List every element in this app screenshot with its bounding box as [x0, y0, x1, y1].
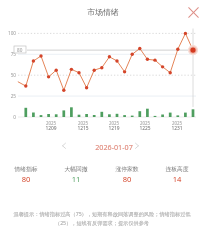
- staticText: 1225: [133, 125, 157, 132]
- staticText: 2026-01-07: [84, 142, 144, 152]
- staticText: 2025: [39, 120, 63, 126]
- staticText: 80: [17, 47, 23, 53]
- staticText: 2025: [133, 120, 157, 126]
- staticText: 25: [2, 93, 16, 99]
- button[interactable]: Close: [185, 4, 202, 21]
- staticText: 涨停家数: [102, 165, 152, 172]
- button[interactable]: 涨停家数: [102, 164, 152, 188]
- staticText: 1231: [165, 125, 189, 132]
- staticText: 14: [152, 174, 202, 184]
- staticText: 2025: [165, 120, 189, 126]
- button[interactable]: 连板高度: [152, 164, 202, 188]
- staticText: 连板高度: [152, 165, 202, 172]
- staticText: 0: [2, 114, 16, 120]
- staticText: 80: [1, 174, 51, 184]
- staticText: 1219: [102, 125, 126, 132]
- staticText: 市场情绪: [58, 7, 148, 17]
- staticText: 50: [2, 72, 16, 78]
- button[interactable]: 2026-01-07: [58, 140, 146, 152]
- staticText: 2025: [102, 120, 126, 126]
- staticText: 1215: [71, 125, 95, 132]
- staticText: 1209: [39, 125, 63, 132]
- staticText: 80: [102, 174, 152, 184]
- staticText: 11: [51, 174, 101, 184]
- staticText: 2025: [71, 120, 95, 126]
- button[interactable]: 情绪指标: [1, 164, 51, 188]
- button[interactable]: 大幅回撤: [51, 164, 101, 188]
- staticText: 100: [2, 30, 16, 36]
- staticText: 情绪指标: [1, 165, 51, 172]
- staticText: 温馨提示：情绪指标过高（75），短期有释放回落调整的风险；情绪指标过低（25），…: [6, 210, 198, 226]
- staticText: 大幅回撤: [51, 165, 101, 172]
- staticText: 75: [2, 51, 16, 57]
